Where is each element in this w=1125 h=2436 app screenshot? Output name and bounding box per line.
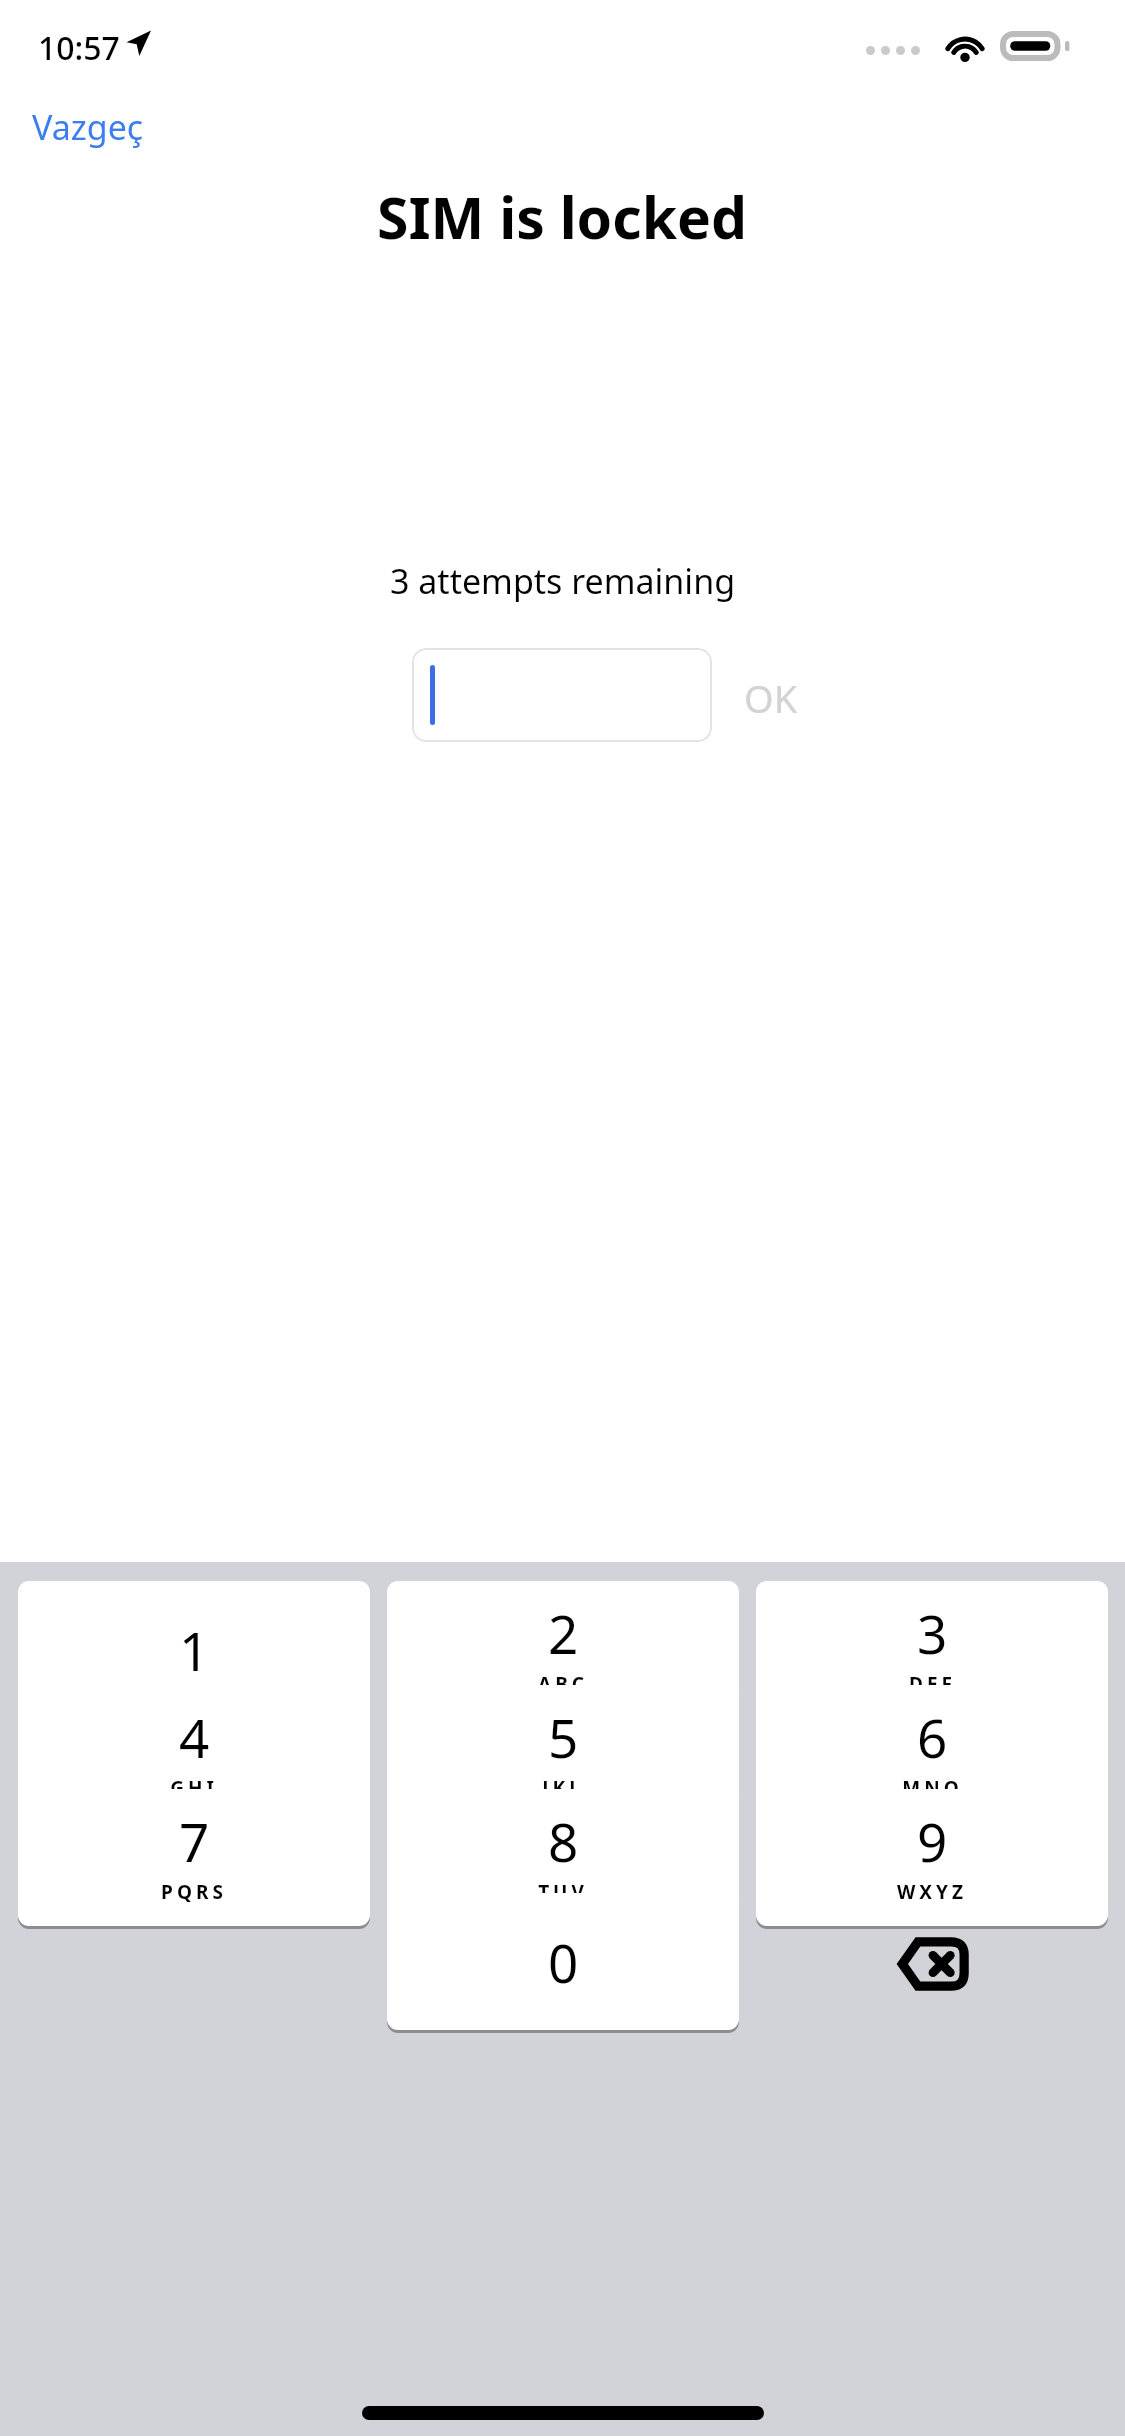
staticText: Vazgeç bbox=[32, 104, 144, 150]
button[interactable]: 1 bbox=[18, 1581, 370, 1718]
staticText: 0 bbox=[548, 1926, 579, 1998]
button[interactable]: 4 bbox=[18, 1685, 370, 1822]
button[interactable]: 5 bbox=[387, 1685, 739, 1822]
staticText: 4 bbox=[179, 1701, 210, 1773]
button[interactable]: 9 bbox=[756, 1789, 1108, 1926]
staticText: 10:57 bbox=[38, 26, 120, 70]
staticText: MNO bbox=[902, 1775, 963, 1801]
staticText: 2 bbox=[548, 1597, 579, 1669]
button[interactable]: 2 bbox=[387, 1581, 739, 1718]
staticText: 6 bbox=[917, 1701, 948, 1773]
staticText: 3 attempts remaining bbox=[390, 558, 736, 604]
staticText: 8 bbox=[548, 1805, 579, 1877]
staticText: 7 bbox=[179, 1805, 210, 1877]
staticText: SIM is locked bbox=[377, 178, 748, 256]
staticText: OK bbox=[744, 672, 798, 724]
button[interactable]: 7 bbox=[18, 1789, 370, 1926]
staticText: JKL bbox=[542, 1775, 584, 1801]
staticText: 5 bbox=[548, 1701, 579, 1773]
button[interactable]: 8 bbox=[387, 1789, 739, 1926]
staticText: ABC bbox=[538, 1671, 588, 1697]
staticText: PQRS bbox=[161, 1879, 227, 1905]
button[interactable]: 0 bbox=[387, 1893, 739, 2030]
button[interactable]: OK bbox=[740, 672, 802, 724]
staticText: WXYZ bbox=[897, 1879, 967, 1905]
staticText: GHI bbox=[170, 1775, 218, 1801]
button[interactable]: 6 bbox=[756, 1685, 1108, 1822]
button[interactable]: Vazgeç bbox=[24, 100, 152, 154]
staticText: 3 bbox=[917, 1597, 948, 1669]
button[interactable] bbox=[412, 648, 712, 742]
button[interactable]: Delete bbox=[756, 1893, 1108, 2034]
staticText: 1 bbox=[179, 1614, 210, 1686]
staticText: TUV bbox=[538, 1879, 588, 1905]
staticText: 9 bbox=[917, 1805, 948, 1877]
button[interactable]: 3 bbox=[756, 1581, 1108, 1718]
staticText: DEF bbox=[909, 1671, 956, 1697]
